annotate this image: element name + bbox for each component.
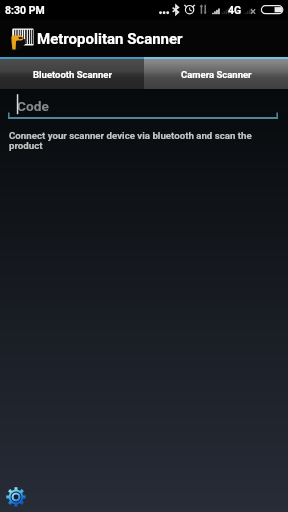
- button[interactable]: Settings: [0, 481, 32, 512]
- staticText: Bluetooth Scanner: [33, 69, 112, 80]
- button[interactable]: Code: [0, 89, 288, 127]
- staticText: Camera Scanner: [181, 69, 252, 80]
- staticText: Connect your scanner device via bluetoot…: [9, 130, 254, 151]
- staticText: 4G: [228, 4, 242, 16]
- staticText: 8:30 PM: [5, 4, 45, 16]
- button[interactable]: Bluetooth Scanner: [0, 57, 144, 89]
- staticText: Metropolitan Scanner: [37, 30, 183, 48]
- button[interactable]: Camera Scanner: [144, 57, 288, 89]
- staticText: Code: [17, 98, 49, 114]
